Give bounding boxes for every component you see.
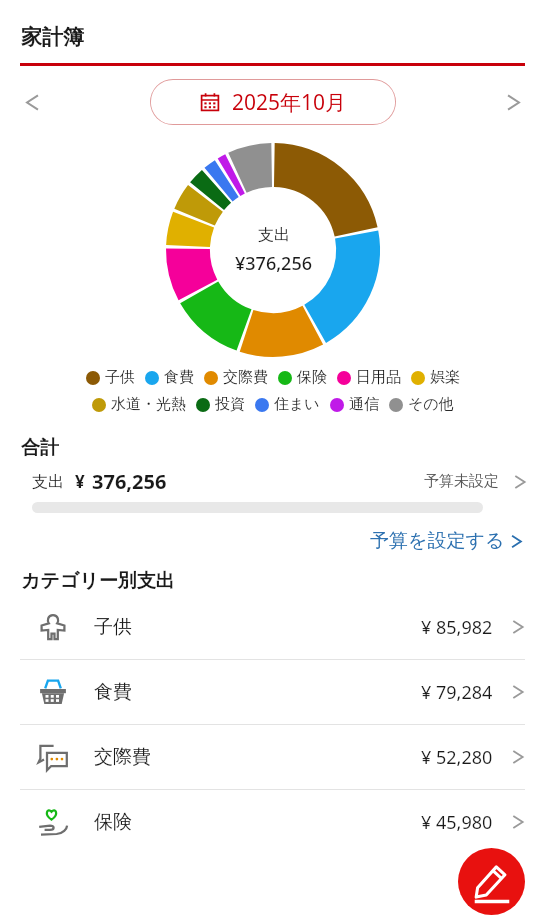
staticText: 投資 [215, 395, 245, 414]
staticText: 予算未設定 [424, 472, 499, 491]
button[interactable]: 2025年10月 [150, 79, 396, 125]
staticText: カテゴリー別支出 [21, 569, 175, 593]
staticText: 家計簿 [21, 24, 84, 50]
staticText: 合計 [21, 436, 59, 460]
button[interactable]: 前の月 [0, 66, 64, 138]
staticText: 子供 [105, 368, 135, 387]
button[interactable]: 子供 [0, 595, 545, 659]
button[interactable]: 交際費 [0, 725, 545, 789]
staticText: 子供 [94, 615, 132, 639]
staticText: 日用品 [356, 368, 401, 387]
staticText: ¥ 79,284 [421, 680, 493, 705]
staticText: 住まい [274, 395, 320, 414]
staticText: 保険 [297, 368, 327, 387]
button[interactable]: 支出 [0, 468, 545, 495]
button[interactable]: 入力 [458, 848, 525, 915]
staticText: その他 [408, 395, 454, 414]
staticText: ¥ 52,280 [421, 745, 493, 770]
staticText: ¥376,256 [235, 251, 312, 276]
button[interactable]: 食費 [0, 660, 545, 724]
staticText: 予算を設定する [370, 529, 505, 553]
staticText: 支出 [258, 225, 290, 245]
staticText: ¥ 45,980 [421, 810, 493, 835]
staticText: 食費 [94, 680, 132, 704]
staticText: 保険 [94, 810, 132, 834]
staticText: 支出 [32, 472, 64, 492]
staticText: 水道・光熱 [111, 395, 186, 414]
staticText: 食費 [164, 368, 194, 387]
staticText: 交際費 [94, 745, 151, 769]
staticText: 交際費 [223, 368, 268, 387]
staticText: ¥ 85,982 [421, 615, 493, 640]
staticText: 娯楽 [430, 368, 460, 387]
button[interactable]: 予算を設定する [370, 529, 545, 553]
staticText: 376,256 [92, 468, 167, 495]
button[interactable]: 保険 [0, 790, 545, 854]
button[interactable]: 次の月 [481, 66, 545, 138]
staticText: ¥ [75, 470, 85, 493]
staticText: 2025年10月 [232, 88, 347, 117]
staticText: 通信 [349, 395, 379, 414]
